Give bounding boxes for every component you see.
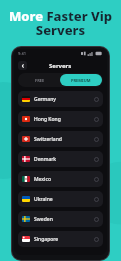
staticText: FREE	[35, 78, 45, 83]
staticText: Hong Kong	[34, 116, 61, 123]
button[interactable]: Ukraine	[18, 191, 103, 207]
button[interactable]: Germany	[18, 91, 103, 107]
staticText: Denmark	[34, 156, 57, 163]
staticText: Servers	[49, 62, 72, 70]
staticText: Singapore	[34, 236, 59, 243]
staticText: PREMIUM	[71, 78, 91, 83]
button[interactable]: Sweden	[18, 211, 103, 227]
button[interactable]: Switzerland	[18, 131, 103, 147]
button[interactable]: Mexico	[18, 171, 103, 187]
button[interactable]: Denmark	[18, 151, 103, 167]
button[interactable]: PREMIUM	[60, 74, 102, 86]
staticText: Sweden	[34, 216, 53, 223]
button[interactable]: Singapore	[18, 231, 103, 247]
button[interactable]: Back	[18, 61, 27, 70]
staticText: 9:41	[18, 51, 26, 56]
staticText: Germany	[34, 96, 56, 103]
staticText: Mexico	[34, 176, 51, 183]
button[interactable]: FREE	[19, 74, 60, 86]
staticText: Ukraine	[34, 196, 53, 203]
button[interactable]: Hong Kong	[18, 111, 103, 127]
staticText: Switzerland	[34, 136, 62, 143]
staticText: More Faster Vip Servers	[4, 7, 117, 39]
